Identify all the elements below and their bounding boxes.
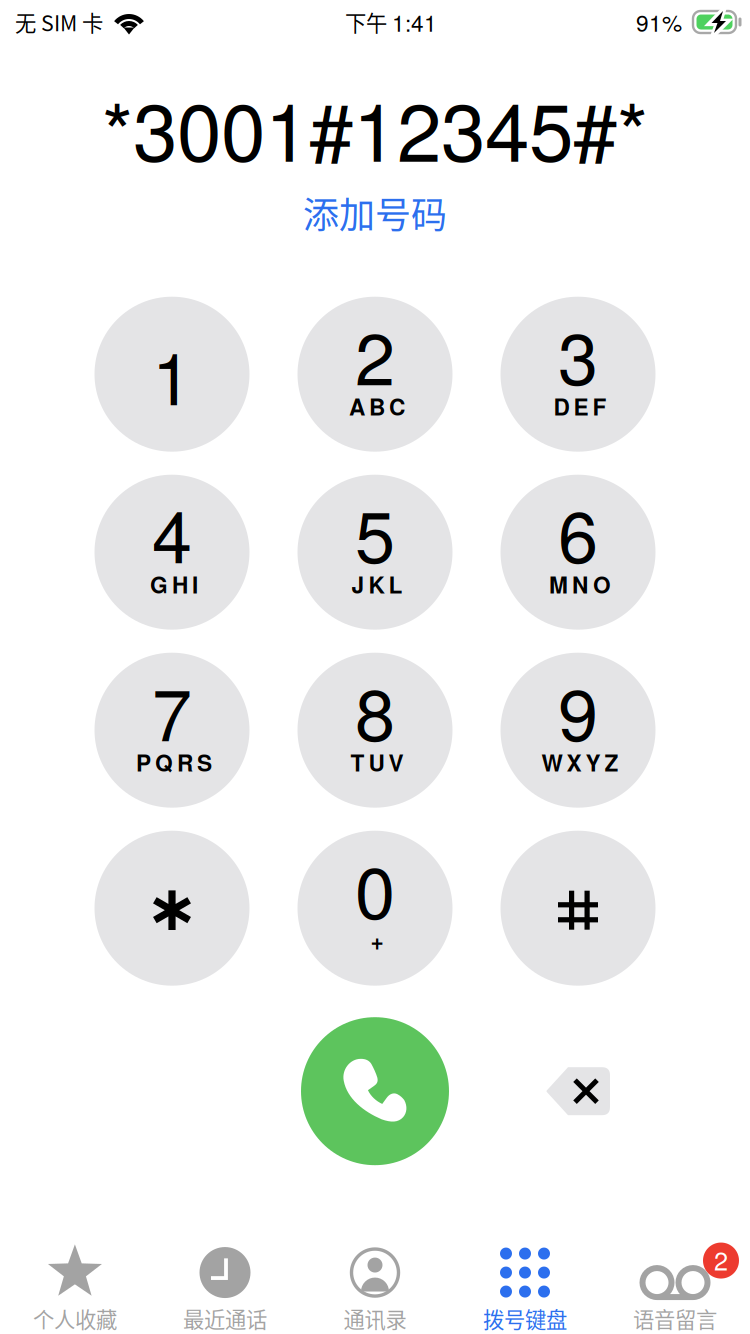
button[interactable]: 通讯录: [300, 1238, 450, 1334]
button[interactable]: 最近通话: [150, 1238, 300, 1334]
button[interactable]: 删除: [546, 1067, 610, 1115]
button[interactable]: 5: [297, 475, 452, 630]
button[interactable]: 6: [500, 475, 655, 630]
staticText: 1: [152, 323, 192, 426]
staticText: 通讯录: [343, 1303, 406, 1334]
staticText: +: [370, 924, 383, 956]
staticText: WXYZ: [541, 746, 618, 778]
staticText: TUV: [350, 746, 403, 778]
staticText: 添加号码: [303, 187, 447, 239]
staticText: 无 SIM 卡: [15, 7, 103, 37]
staticText: 9: [558, 659, 598, 762]
staticText: 5: [355, 481, 395, 584]
staticText: PQRS: [136, 746, 212, 778]
button[interactable]: [94, 831, 249, 986]
staticText: JKL: [351, 568, 402, 600]
button[interactable]: 通话: [301, 1017, 449, 1165]
staticText: 6: [558, 481, 598, 584]
button[interactable]: 9: [500, 653, 655, 808]
staticText: 0: [355, 837, 395, 940]
staticText: 语音留言: [633, 1303, 717, 1334]
staticText: *3001#12345#*: [102, 70, 648, 185]
staticText: MNO: [549, 568, 611, 600]
button[interactable]: 0: [297, 831, 452, 986]
staticText: 91%: [636, 6, 682, 38]
button[interactable]: 2: [600, 1238, 750, 1334]
staticText: 2: [714, 1241, 728, 1278]
staticText: ABC: [349, 390, 405, 422]
button[interactable]: 8: [297, 653, 452, 808]
button[interactable]: 个人收藏: [0, 1238, 150, 1334]
button[interactable]: 3: [500, 297, 655, 452]
button[interactable]: 1: [94, 297, 249, 452]
button[interactable]: [500, 831, 655, 986]
staticText: 3: [558, 303, 598, 406]
button[interactable]: 添加号码: [303, 187, 447, 239]
staticText: 7: [152, 659, 192, 762]
staticText: DEF: [553, 390, 606, 422]
button[interactable]: 7: [94, 653, 249, 808]
staticText: 4: [152, 481, 192, 584]
staticText: 8: [355, 659, 395, 762]
button[interactable]: 拨号键盘: [450, 1238, 600, 1334]
staticText: 1:41: [392, 6, 437, 38]
staticText: 拨号键盘: [483, 1303, 567, 1334]
staticText: 下午: [345, 7, 392, 37]
button[interactable]: 4: [94, 475, 249, 630]
staticText: 个人收藏: [33, 1303, 117, 1334]
staticText: GHI: [150, 568, 198, 600]
staticText: 最近通话: [183, 1303, 267, 1334]
button[interactable]: 2: [297, 297, 452, 452]
staticText: 2: [355, 303, 395, 406]
